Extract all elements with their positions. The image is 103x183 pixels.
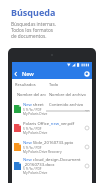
button[interactable]: Polaris Office_new_ver.pdf [12,118,92,137]
staticText: New [22,70,34,77]
staticText: Nombre del archivo [49,92,87,97]
button[interactable]: Info [84,125,90,131]
button[interactable]: New Slide_20160733.pptx [12,137,92,156]
staticText: 5 % Yo / PDF [23,127,42,131]
staticText: My Polaris Drive [23,112,48,116]
staticText: New sheet [23,102,44,108]
staticText: Búsquedas internas. Todos los formatos d… [11,21,56,39]
button[interactable]: Info [84,106,90,112]
button[interactable]: Info [84,144,90,150]
staticText: New Slide_20160733.pptx [23,140,74,146]
staticText: 5 % Yo / PDF [23,146,42,150]
staticText: Nombre del archivo [17,92,55,97]
button[interactable]: Search [82,69,91,78]
button[interactable]: Todo [46,79,90,89]
staticText: Polaris Office_new_ver.pdf [23,121,75,127]
button[interactable]: New sheet [12,99,92,118]
button[interactable]: Contenido archivo [46,99,90,109]
staticText: Todo [49,82,59,87]
button[interactable]: Nombre del archivo [46,89,90,99]
staticText: 5 % Yo / PDF [23,167,42,171]
button[interactable]: Nombre del archivo [12,89,92,99]
staticText: My Polaris Drive [23,131,48,135]
button[interactable]: Resultados [12,79,92,89]
staticText: Resultados [15,82,36,87]
button[interactable]: New cloud_design-Document _20160733.docx [12,156,92,175]
staticText: My Polaris Drive [23,171,48,175]
staticText: Búsqueda [11,6,56,18]
staticText: New cloud_design-Document _20160733.docx [23,157,81,167]
button[interactable]: Info [84,163,90,169]
staticText: Contenido archivo [49,102,84,107]
button[interactable]: Back [12,70,20,78]
staticText: 5 % Yo / PDF [23,108,42,112]
staticText: My Polaris Drive Recovery [23,150,62,154]
